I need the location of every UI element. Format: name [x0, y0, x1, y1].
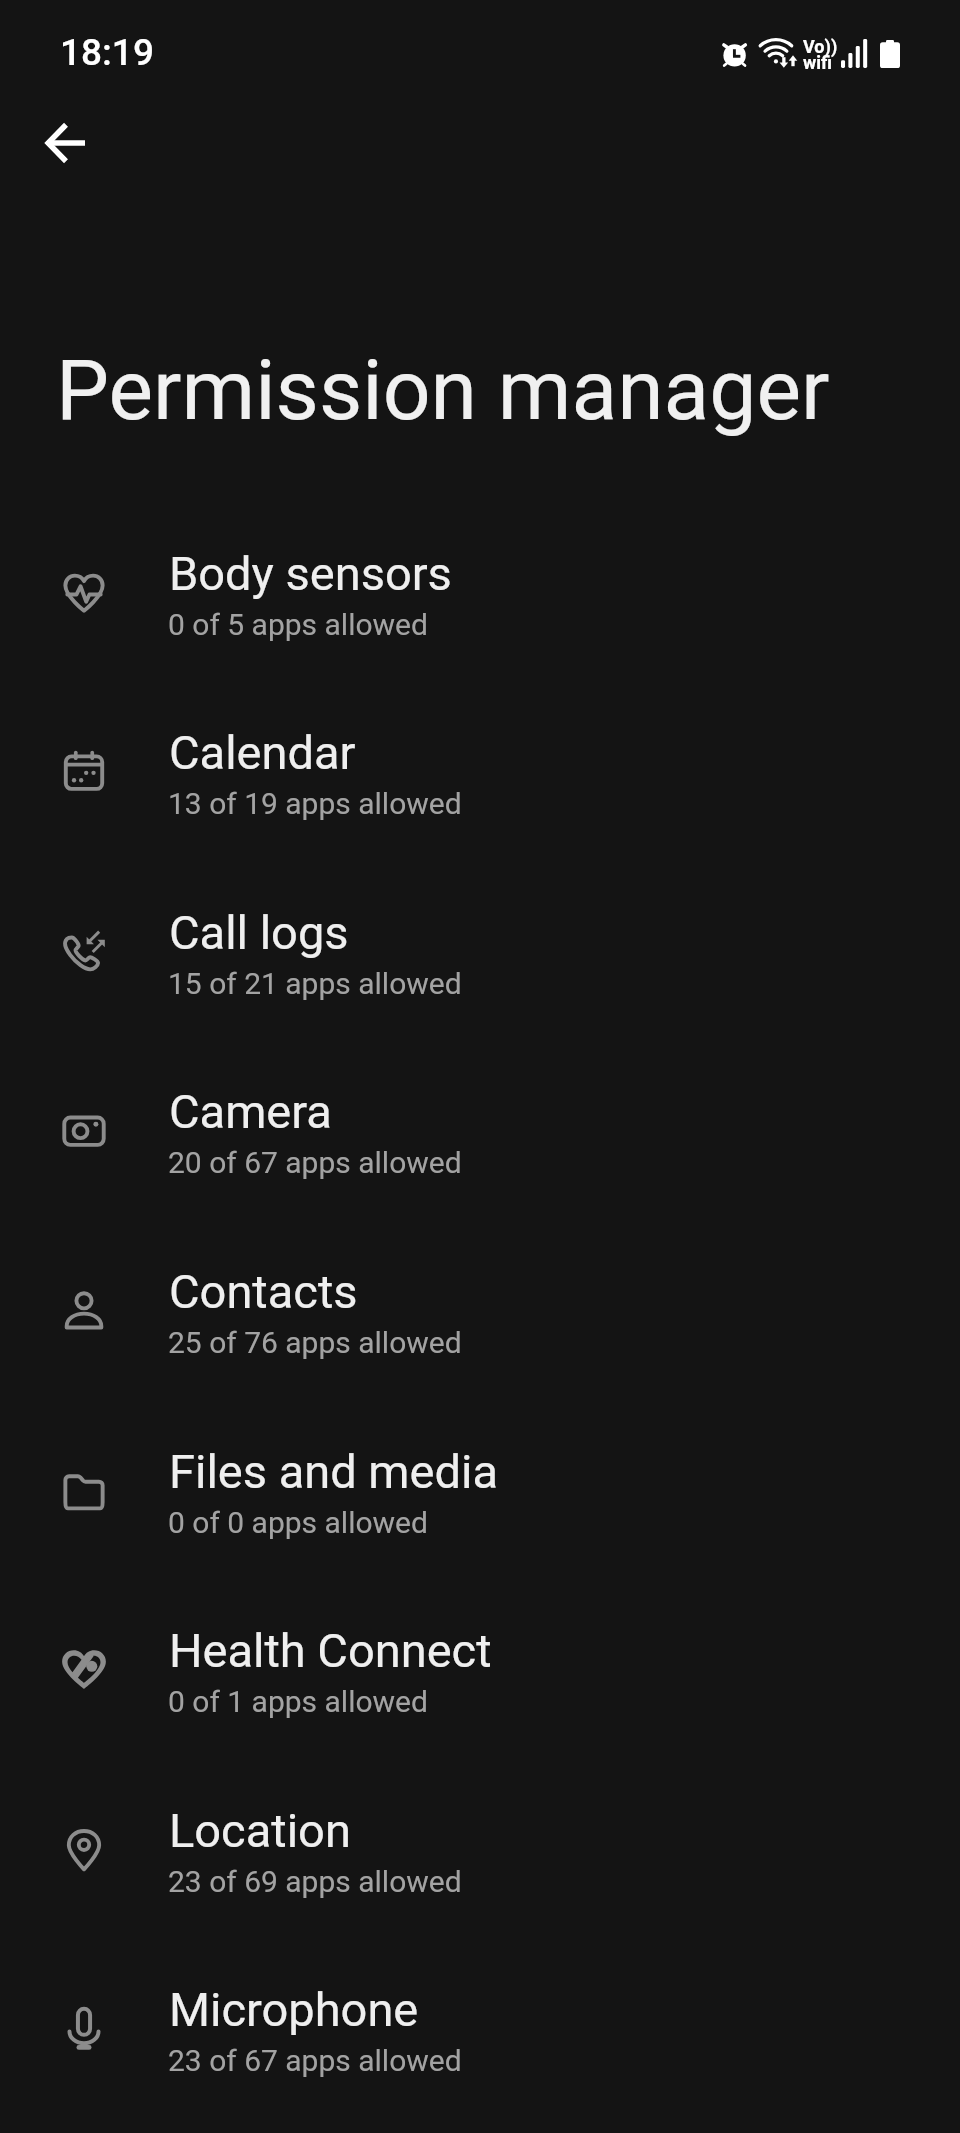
staticText: Body sensors	[169, 546, 452, 601]
button[interactable]: Back	[23, 100, 109, 186]
staticText: 0 of 5 apps allowed	[168, 607, 428, 642]
staticText: Vo))	[803, 36, 838, 57]
staticText: Permission manager	[56, 341, 830, 439]
staticText: 0 of 1 apps allowed	[168, 1684, 428, 1719]
staticText: Contacts	[169, 1264, 358, 1319]
staticText: 15 of 21 apps allowed	[168, 966, 462, 1001]
button[interactable]: Location	[0, 1759, 960, 1939]
staticText: 25 of 76 apps allowed	[168, 1325, 462, 1360]
staticText: Microphone	[169, 1982, 419, 2037]
staticText: wifi	[803, 52, 832, 73]
button[interactable]: Health Connect	[0, 1579, 960, 1759]
staticText: 13 of 19 apps allowed	[168, 786, 462, 821]
staticText: Camera	[169, 1084, 332, 1139]
button[interactable]: Calendar	[0, 681, 960, 861]
button[interactable]: Call logs	[0, 861, 960, 1041]
staticText: 18:19	[60, 31, 154, 74]
staticText: Files and media	[169, 1444, 498, 1499]
staticText: Health Connect	[169, 1623, 492, 1678]
staticText: 23 of 67 apps allowed	[168, 2043, 462, 2078]
staticText: Calendar	[169, 725, 356, 780]
button[interactable]: Microphone	[0, 1938, 960, 2118]
button[interactable]: Files and media	[0, 1400, 960, 1580]
staticText: Call logs	[169, 905, 349, 960]
staticText: 0 of 0 apps allowed	[168, 1505, 428, 1540]
staticText: 20 of 67 apps allowed	[168, 1145, 462, 1180]
button[interactable]: Body sensors	[0, 502, 960, 682]
staticText: 23 of 69 apps allowed	[168, 1864, 462, 1899]
button[interactable]: Contacts	[0, 1220, 960, 1400]
staticText: Location	[169, 1803, 351, 1858]
button[interactable]: Camera	[0, 1040, 960, 1220]
